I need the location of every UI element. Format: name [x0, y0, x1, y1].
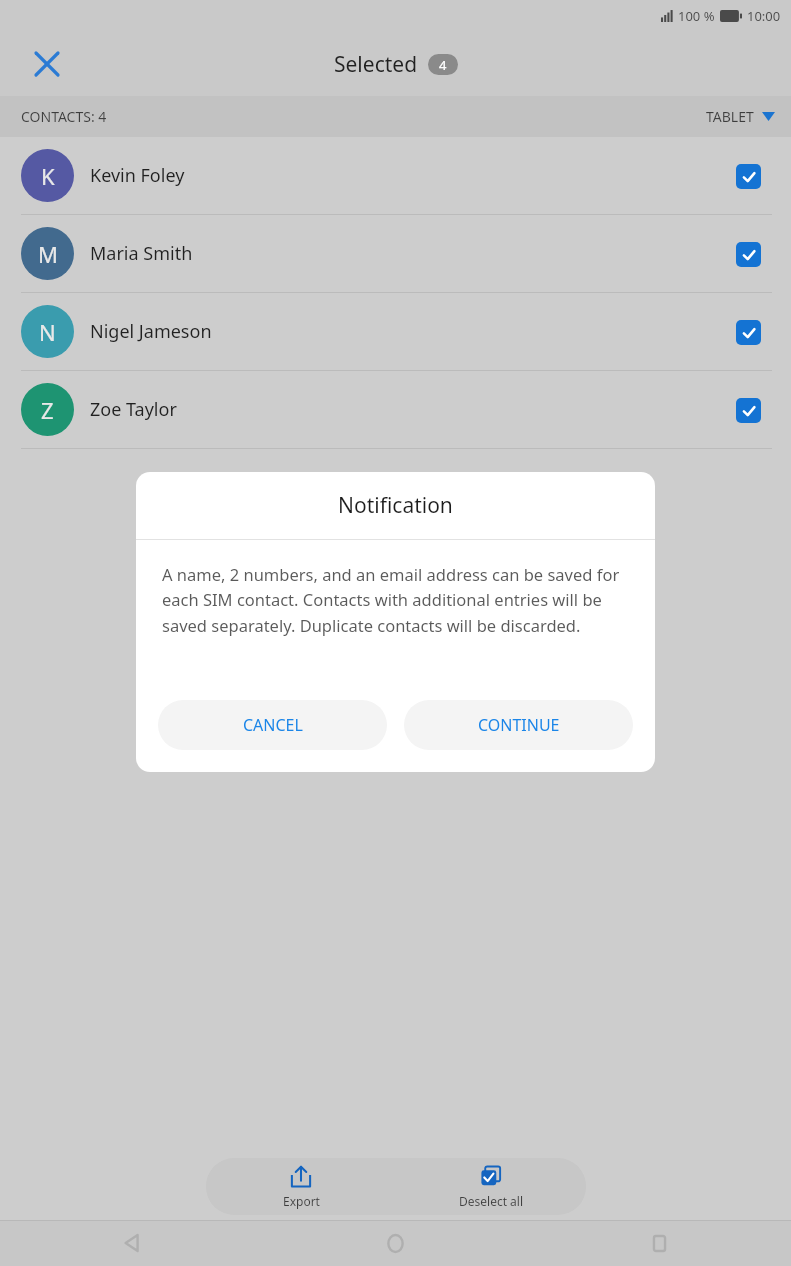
button[interactable]: Selected Maria Smith — [724, 230, 772, 278]
staticText: Zoe Taylor — [90, 397, 177, 422]
staticText: N — [39, 317, 56, 347]
button[interactable]: Back — [112, 1223, 152, 1263]
staticText: Nigel Jameson — [90, 319, 212, 344]
staticText: CONTACTS: 4 — [21, 107, 107, 126]
button[interactable]: Selected Nigel Jameson — [724, 308, 772, 356]
button[interactable]: CANCEL — [158, 700, 387, 750]
staticText: Maria Smith — [90, 241, 193, 266]
staticText: Kevin Foley — [90, 163, 185, 188]
button[interactable]: Export — [206, 1158, 396, 1215]
staticText: CANCEL — [243, 714, 303, 736]
button[interactable]: Z — [0, 371, 791, 448]
staticText: Deselect all — [459, 1193, 524, 1209]
button[interactable]: Close — [22, 39, 72, 89]
button[interactable]: K — [0, 137, 791, 214]
button[interactable]: N — [0, 293, 791, 370]
staticText: A name, 2 numbers, and an email address … — [162, 563, 629, 637]
button[interactable]: Home — [375, 1223, 415, 1263]
staticText: Export — [283, 1193, 320, 1209]
button[interactable]: M — [0, 215, 791, 292]
staticText: 4 — [439, 56, 447, 74]
staticText: Z — [41, 395, 54, 425]
staticText: 100 % — [678, 7, 715, 25]
staticText: 10:00 — [747, 7, 781, 25]
staticText: CONTINUE — [478, 714, 560, 736]
button[interactable]: Recent apps — [639, 1223, 679, 1263]
staticText: M — [38, 239, 58, 269]
staticText: Selected — [334, 50, 418, 79]
staticText: TABLET — [706, 107, 754, 126]
button[interactable]: Selected Kevin Foley — [724, 152, 772, 200]
staticText: Notification — [338, 491, 453, 520]
button[interactable]: TABLET — [706, 107, 775, 126]
button[interactable]: CONTINUE — [404, 700, 633, 750]
button[interactable]: Deselect all — [396, 1158, 586, 1215]
button[interactable]: Selected Zoe Taylor — [724, 386, 772, 434]
staticText: K — [41, 161, 55, 191]
